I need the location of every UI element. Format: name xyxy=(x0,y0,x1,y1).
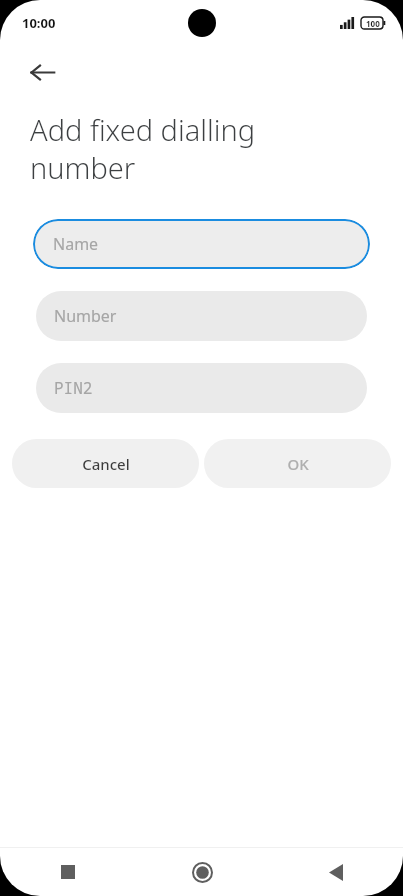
button[interactable]: OK xyxy=(204,439,391,488)
staticText: 10:00 xyxy=(22,14,56,32)
button[interactable]: Name xyxy=(33,219,370,269)
button[interactable]: Home xyxy=(135,848,269,896)
button[interactable]: Recent apps xyxy=(0,848,135,896)
button[interactable]: PIN2 xyxy=(36,363,367,413)
button[interactable]: Back xyxy=(269,848,403,896)
button[interactable]: Cancel xyxy=(12,439,199,488)
staticText: Number xyxy=(54,305,117,327)
staticText: PIN2 xyxy=(54,377,93,399)
staticText: Cancel xyxy=(82,454,130,474)
staticText: 100 xyxy=(366,18,380,29)
staticText: Name xyxy=(53,233,99,255)
button[interactable]: Number xyxy=(36,291,367,341)
button[interactable]: Back xyxy=(16,46,68,98)
staticText: OK xyxy=(287,454,309,474)
staticText: Add fixed dialling number xyxy=(30,110,357,187)
